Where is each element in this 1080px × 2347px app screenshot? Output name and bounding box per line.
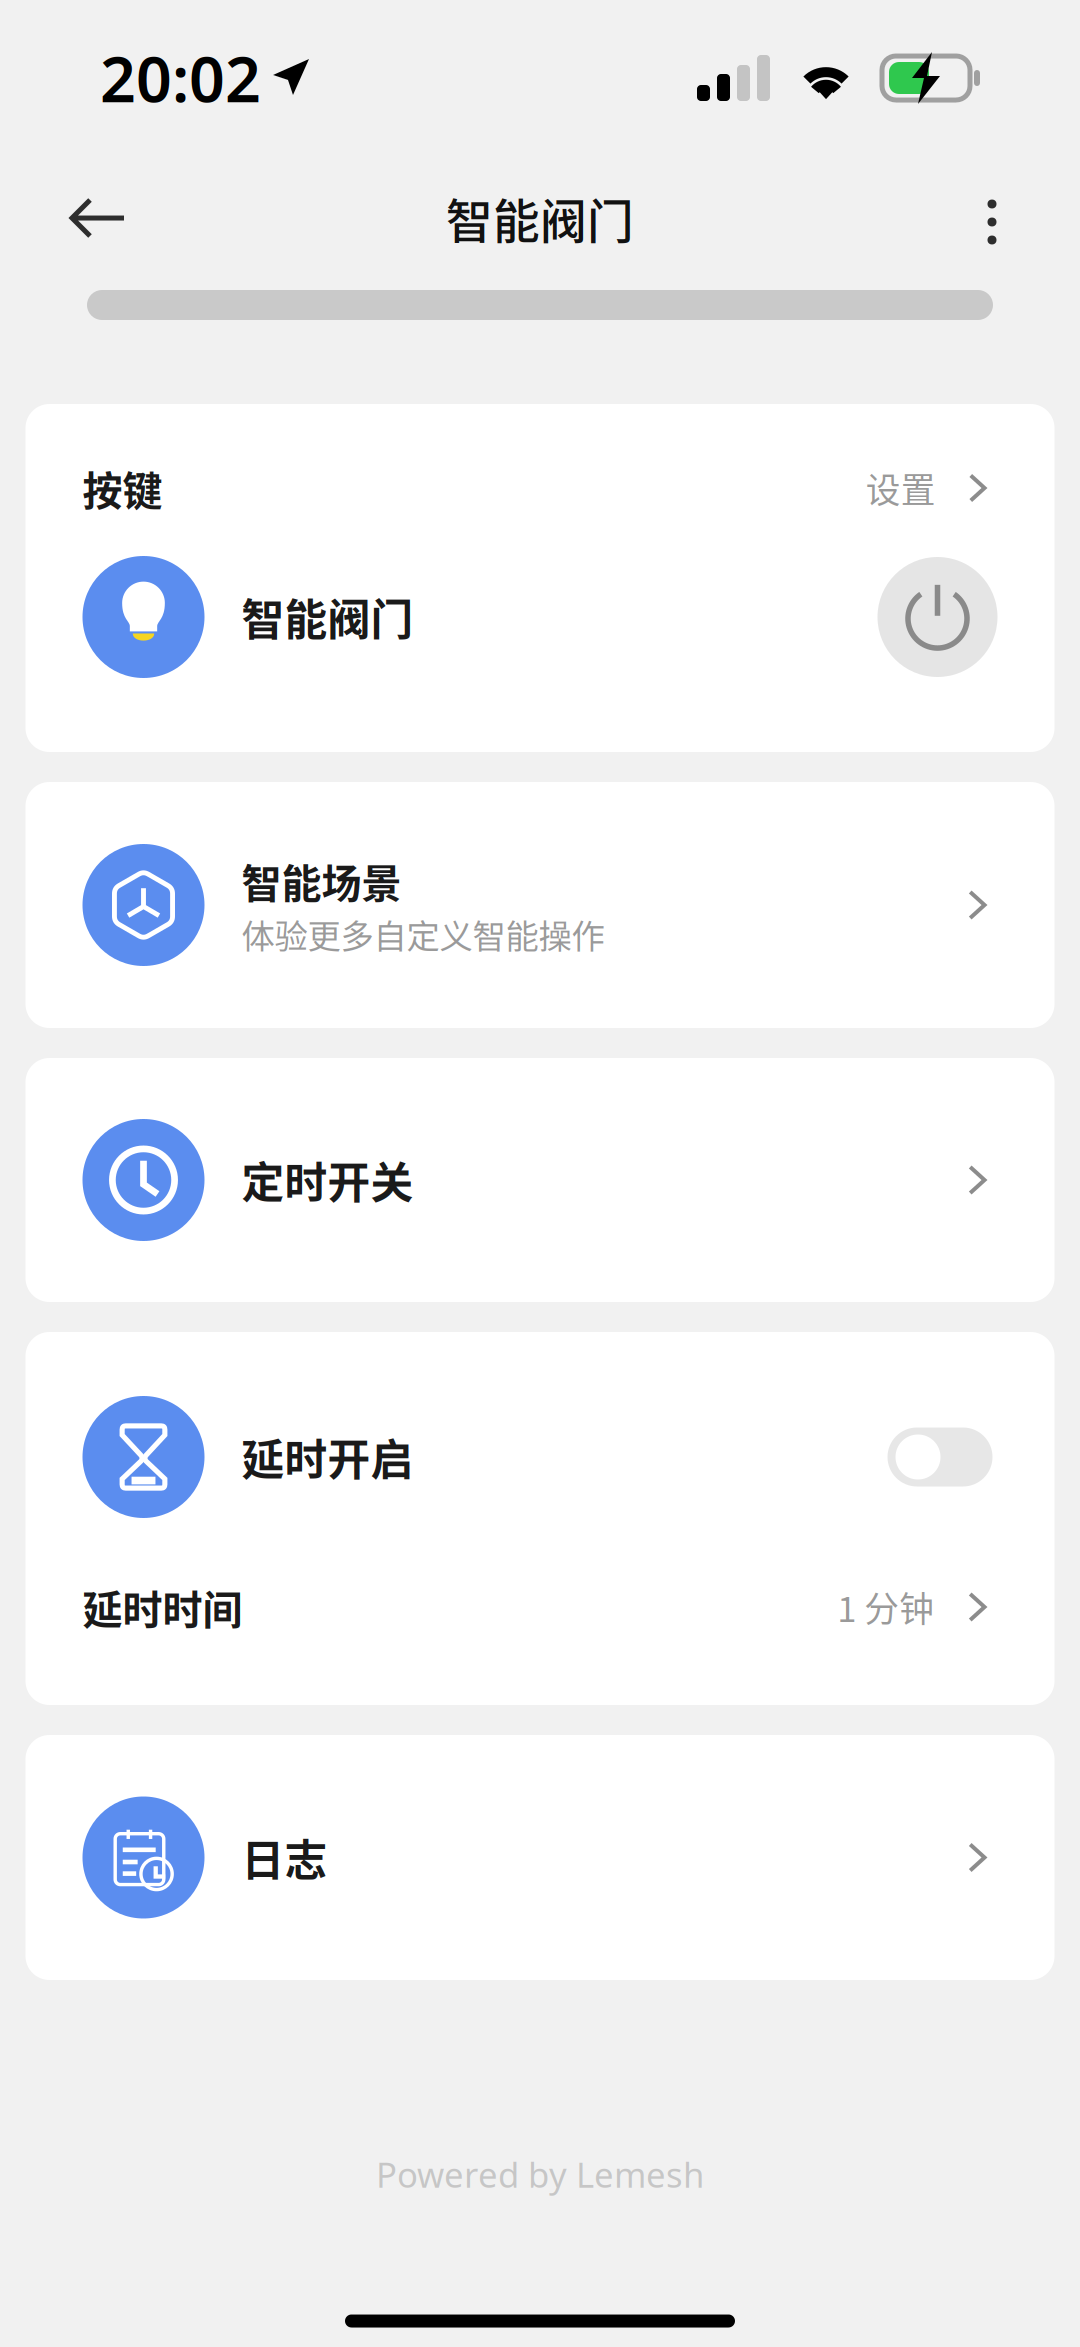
staticText: 1 分钟 [837, 1582, 934, 1632]
button[interactable]: 延时时间 [25, 1562, 1054, 1652]
staticText: 智能阀门 [446, 184, 634, 252]
staticText: 20:02 [100, 35, 261, 121]
staticText: Powered by Lemesh [376, 2151, 704, 2198]
button[interactable]: Back [48, 176, 140, 260]
button[interactable]: More options [950, 175, 1032, 260]
button[interactable]: 智能场景 [25, 782, 1054, 1028]
staticText: 设置 [866, 463, 936, 513]
staticText: 智能阀门 [241, 586, 413, 648]
button[interactable]: 日志 [25, 1735, 1054, 1980]
button[interactable]: Power [877, 557, 997, 677]
staticText: 延时时间 [82, 1578, 242, 1636]
staticText: 体验更多自定义智能操作 [241, 910, 604, 958]
staticText: 智能场景 [241, 852, 401, 910]
staticText: 按键 [82, 459, 162, 517]
staticText: 日志 [241, 1827, 327, 1888]
button[interactable]: Delay toggle [887, 1427, 997, 1486]
button[interactable]: 定时开关 [25, 1058, 1054, 1302]
staticText: 定时开关 [241, 1149, 413, 1211]
staticText: 延时开启 [241, 1426, 413, 1488]
button[interactable]: 按键 [25, 404, 1054, 556]
